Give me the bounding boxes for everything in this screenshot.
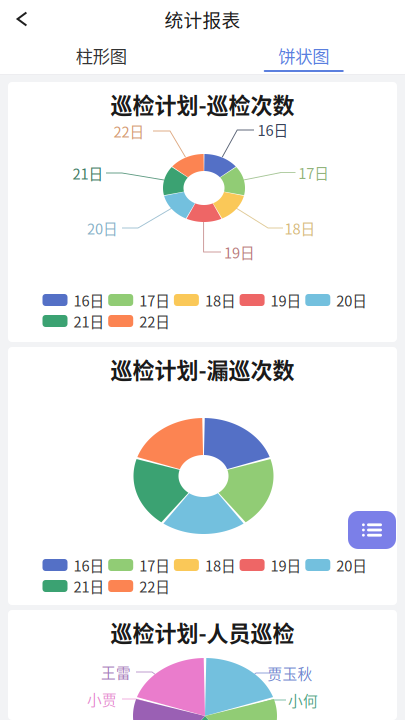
staticText: 20日 bbox=[87, 217, 118, 239]
staticText: 16日 bbox=[73, 554, 104, 576]
staticText: 22日 bbox=[113, 120, 144, 142]
staticText: 20日 bbox=[336, 554, 367, 576]
staticText: 18日 bbox=[284, 217, 315, 239]
staticText: 21日 bbox=[72, 162, 103, 184]
staticText: 统计报表 bbox=[164, 5, 240, 32]
staticText: 18日 bbox=[205, 554, 236, 576]
staticText: 17日 bbox=[139, 289, 170, 311]
staticText: 柱形图 bbox=[76, 43, 127, 68]
staticText: 巡检计划-人员巡检 bbox=[110, 616, 294, 648]
staticText: 21日 bbox=[73, 575, 104, 597]
staticText: 饼状图 bbox=[278, 43, 329, 68]
staticText: 小何 bbox=[288, 689, 318, 711]
staticText: 17日 bbox=[298, 162, 329, 183]
staticText: 巡检计划-巡检次数 bbox=[110, 88, 294, 120]
staticText: 小贾 bbox=[87, 688, 117, 710]
staticText: 21日 bbox=[73, 310, 104, 332]
staticText: 巡检计划-漏巡次数 bbox=[110, 353, 294, 385]
button[interactable]: 饼状图 bbox=[202, 38, 405, 74]
button[interactable]: 切换图表列表 bbox=[348, 511, 396, 549]
staticText: 22日 bbox=[139, 310, 170, 332]
staticText: 贾玉秋 bbox=[267, 662, 312, 684]
staticText: 22日 bbox=[139, 575, 170, 597]
staticText: 17日 bbox=[139, 554, 170, 576]
staticText: 19日 bbox=[271, 554, 302, 576]
staticText: 20日 bbox=[336, 289, 367, 311]
staticText: 16日 bbox=[73, 289, 104, 311]
staticText: 王雷 bbox=[101, 661, 131, 683]
staticText: 19日 bbox=[224, 241, 255, 263]
staticText: 19日 bbox=[271, 289, 302, 311]
button[interactable]: 柱形图 bbox=[0, 38, 202, 74]
staticText: 18日 bbox=[205, 289, 236, 311]
button[interactable]: 返回 bbox=[0, 0, 44, 38]
staticText: 16日 bbox=[257, 119, 288, 140]
